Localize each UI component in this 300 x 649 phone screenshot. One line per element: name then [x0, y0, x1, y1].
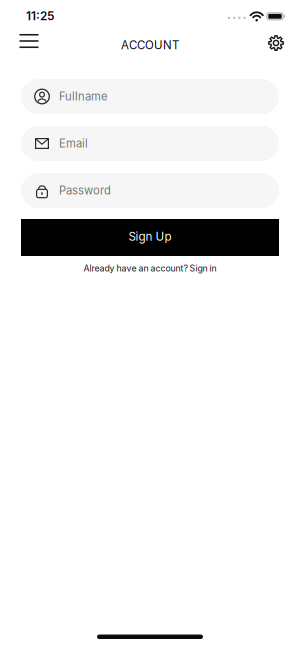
staticText: Password [59, 184, 111, 197]
button[interactable] [19, 38, 38, 52]
staticText: Already have an account? Sign in [83, 263, 216, 274]
button[interactable]: Email [21, 126, 279, 161]
staticText: ACCOUNT [121, 38, 179, 52]
button[interactable]: Already have an account? Sign in [83, 263, 216, 274]
button[interactable]: Sign Up [21, 219, 279, 256]
staticText: 11:25 [26, 9, 54, 23]
staticText: Email [59, 137, 88, 150]
button[interactable] [268, 36, 284, 53]
button[interactable]: Fullname [21, 79, 279, 114]
staticText: Fullname [59, 90, 108, 103]
button[interactable]: Password [21, 173, 279, 208]
staticText: Sign Up [128, 229, 171, 243]
